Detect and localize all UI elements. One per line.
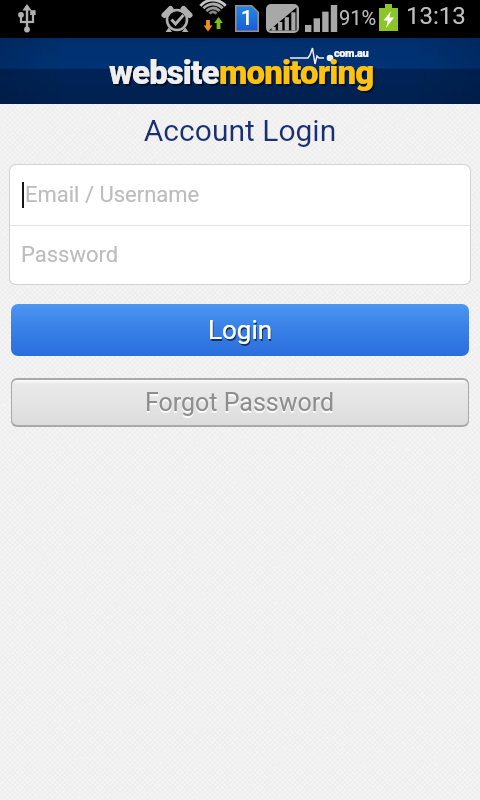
staticText: 91%: [339, 6, 377, 29]
staticText: Email / Username: [25, 182, 200, 208]
staticText: monitoring: [219, 53, 374, 92]
staticText: monitoring: [221, 55, 376, 94]
staticText: website: [111, 55, 221, 94]
button[interactable]: Login: [11, 304, 469, 356]
staticText: Account Login: [0, 113, 480, 148]
staticText: com.au: [334, 47, 369, 60]
button[interactable]: Password: [10, 226, 470, 284]
staticText: Forgot Password: [145, 388, 335, 417]
staticText: 13:13: [406, 2, 466, 30]
staticText: Login: [209, 317, 274, 347]
staticText: Password: [21, 242, 119, 268]
staticText: Forgot Password: [145, 390, 335, 419]
staticText: Login: [208, 315, 273, 345]
staticText: website: [109, 53, 219, 92]
staticText: 1: [241, 6, 253, 29]
button[interactable]: Forgot Password: [12, 380, 468, 425]
button[interactable]: Email / Username: [10, 165, 470, 225]
